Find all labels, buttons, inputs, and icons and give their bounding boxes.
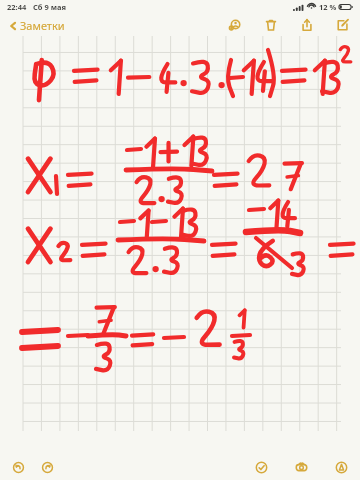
button[interactable]: New note (334, 16, 352, 34)
button[interactable]: Redo (38, 458, 57, 477)
button[interactable]: Undo (9, 458, 28, 477)
button[interactable]: Заметки (6, 16, 67, 35)
staticText: Сб 9 мая (33, 2, 66, 12)
staticText: Заметки (20, 18, 65, 33)
button[interactable]: Add people (226, 16, 244, 34)
button[interactable]: Delete (262, 16, 280, 34)
staticText: 22:44 (7, 2, 27, 12)
button[interactable]: Share (298, 16, 316, 34)
staticText: 12 % (319, 2, 337, 12)
button[interactable]: Markup (332, 458, 351, 477)
button[interactable]: Checklist (252, 458, 271, 477)
button[interactable]: Camera (292, 458, 311, 477)
